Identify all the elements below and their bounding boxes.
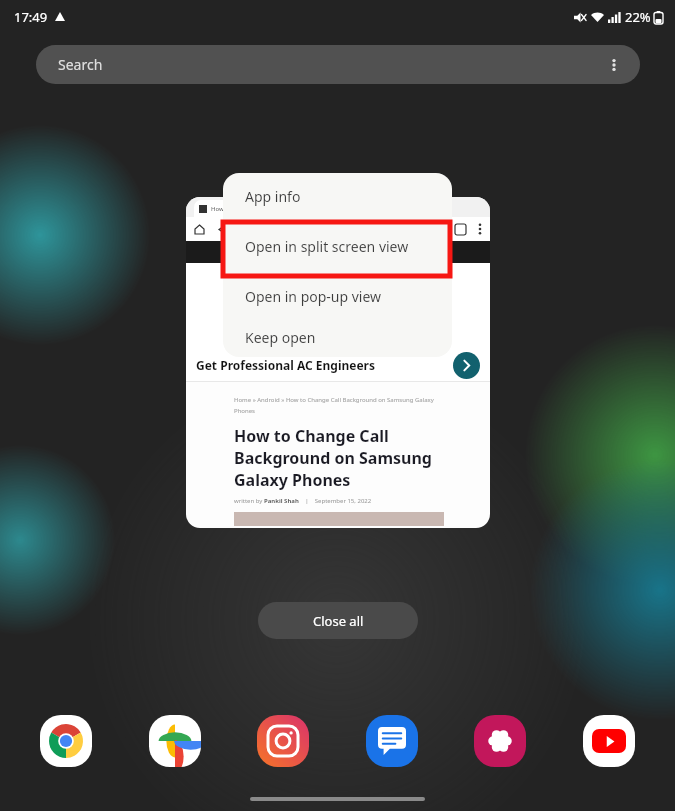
- staticText: How to Change Call: [234, 425, 389, 447]
- staticText: Keep open: [245, 328, 316, 347]
- button[interactable]: More options: [604, 55, 624, 75]
- button[interactable]: Open in split screen view: [223, 219, 452, 274]
- staticText: Get Professional AC Engineers: [196, 357, 375, 373]
- staticText: | September 15, 2022: [299, 497, 372, 505]
- button[interactable]: Next: [453, 352, 480, 379]
- button[interactable]: App info: [223, 173, 452, 219]
- button[interactable]: Keep open: [223, 318, 452, 357]
- staticText: Phones: [234, 407, 255, 415]
- staticText: 17:49: [14, 8, 48, 26]
- button[interactable]: YouTube: [581, 713, 637, 769]
- button[interactable]: Photos: [147, 713, 203, 769]
- staticText: Close all: [313, 612, 364, 630]
- staticText: App info: [245, 187, 301, 206]
- staticText: Home » Android » How to Change Call Back…: [234, 396, 434, 404]
- button[interactable]: Close all: [258, 602, 418, 639]
- staticText: Open in pop-up view: [245, 287, 382, 306]
- staticText: Galaxy Phones: [234, 469, 351, 491]
- button[interactable]: Chrome: [38, 713, 94, 769]
- staticText: Background on Samsung: [234, 447, 432, 469]
- button[interactable]: Messages: [364, 713, 420, 769]
- button[interactable]: Open in pop-up view: [223, 274, 452, 318]
- staticText: How to: [211, 205, 232, 213]
- button[interactable]: Instagram: [255, 713, 311, 769]
- staticText: 22%: [625, 8, 651, 26]
- staticText: Pankil Shah: [264, 497, 299, 505]
- staticText: written by: [234, 497, 264, 505]
- staticText: Search: [58, 55, 103, 74]
- button[interactable]: Search: [36, 45, 640, 84]
- button[interactable]: How to: [186, 197, 490, 528]
- button[interactable]: Gallery: [472, 713, 528, 769]
- staticText: Open in split screen view: [245, 237, 409, 256]
